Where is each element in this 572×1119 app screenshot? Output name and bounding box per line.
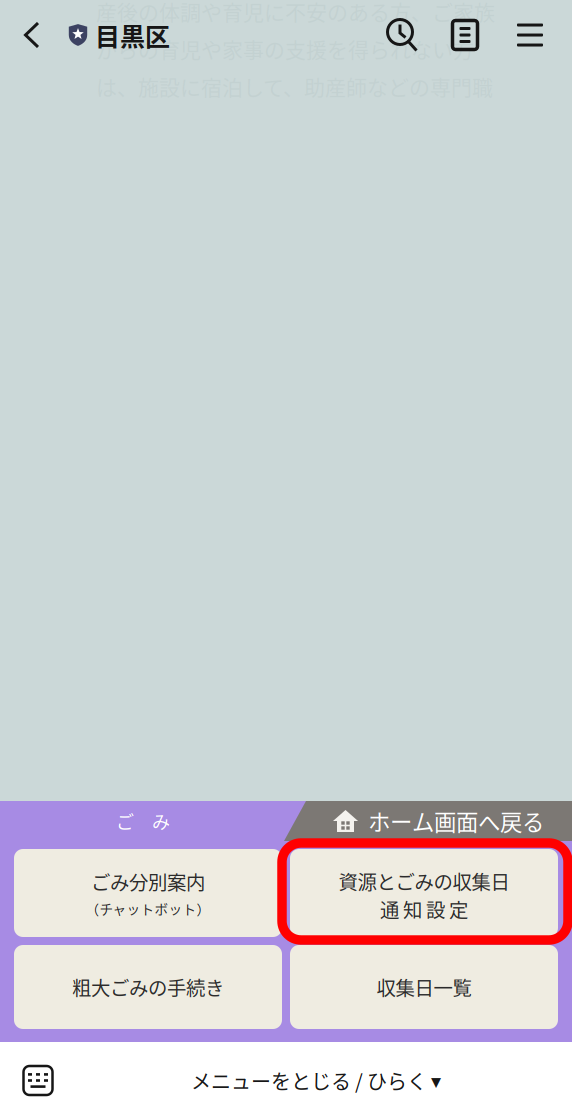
- staticText: ごみ分別案内: [91, 868, 205, 896]
- staticText: ホーム画面へ戻る: [368, 805, 544, 837]
- button[interactable]: ご み: [0, 801, 286, 841]
- staticText: 通知設定: [380, 895, 468, 923]
- button[interactable]: メニューをとじる / ひらく ▾: [166, 1042, 466, 1119]
- staticText: メニューをとじる / ひらく ▾: [191, 1066, 441, 1095]
- button[interactable]: 粗大ごみの手続き: [14, 945, 282, 1029]
- staticText: ご み: [116, 808, 170, 834]
- button[interactable]: ごみ分別案内: [14, 849, 282, 937]
- button[interactable]: メニュー: [501, 0, 559, 70]
- button[interactable]: 収集日一覧: [290, 945, 558, 1029]
- staticText: 産後の体調や育児に不安のある方、ご家族: [96, 0, 495, 26]
- button[interactable]: キーボード: [0, 1042, 76, 1119]
- staticText: からの育児や家事の支援を得られない方: [96, 33, 474, 64]
- button[interactable]: 戻る: [0, 0, 64, 70]
- staticText: 収集日一覧: [376, 973, 471, 1001]
- button[interactable]: 資源とごみの収集日: [290, 849, 558, 937]
- button[interactable]: ホーム画面へ戻る: [333, 801, 572, 841]
- button[interactable]: 履歴から検索: [373, 0, 431, 70]
- staticText: 粗大ごみの手続き: [72, 973, 224, 1001]
- staticText: （チャットボット）: [85, 899, 210, 918]
- staticText: 目黒区: [95, 17, 170, 53]
- button[interactable]: ページ一覧: [436, 0, 494, 70]
- staticText: 資源とごみの収集日: [338, 867, 509, 895]
